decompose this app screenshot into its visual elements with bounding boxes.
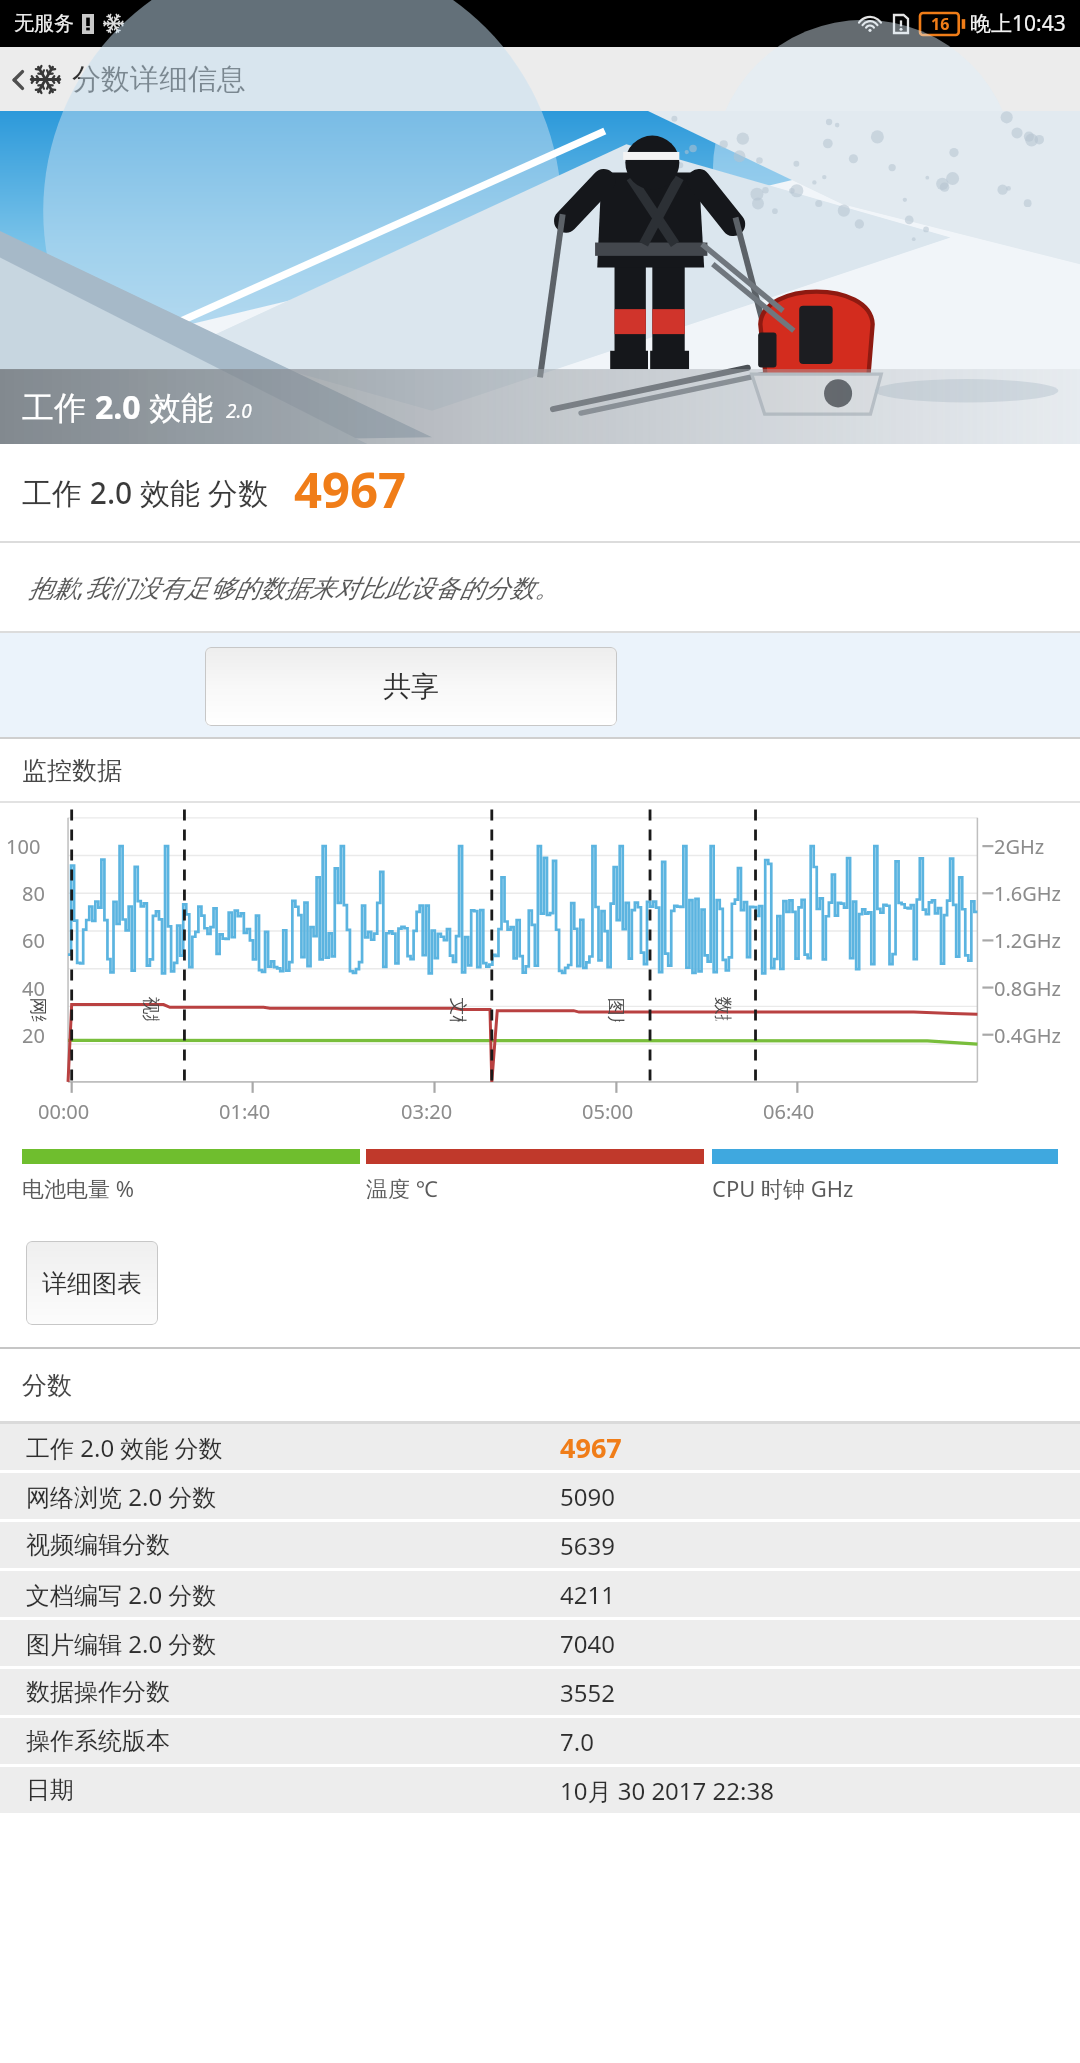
staticText: 电池电量 % [22, 1173, 135, 1203]
staticText: 2.0 [226, 398, 252, 424]
staticText: 80 [22, 880, 45, 907]
button[interactable]: 网络浏览 2.0 分数 [0, 1473, 1080, 1519]
staticText: 5639 [560, 1529, 615, 1562]
staticText: 抱歉,我们没有足够的数据来对比此设备的分数。 [28, 570, 560, 604]
staticText: 操作系统版本 [26, 1726, 170, 1756]
staticText: 无服务 [14, 11, 74, 36]
staticText: 日期 [26, 1775, 74, 1805]
staticText: 40 [22, 975, 45, 1002]
staticText: 文档编写 2.0 分数 [26, 1578, 217, 1611]
staticText: 1.6GHz [994, 880, 1062, 907]
staticText: 分数详细信息 [72, 61, 246, 98]
staticText: 5090 [560, 1480, 615, 1513]
staticText: 16 [931, 13, 950, 35]
button[interactable]: 数据操作分数 [0, 1669, 1080, 1715]
staticText: 工作 [22, 385, 95, 429]
staticText: 网络浏览 2.0 [25, 997, 50, 1021]
button[interactable]: 视频编辑分数 [0, 1522, 1080, 1568]
button[interactable]: 文档编写 2.0 分数 [0, 1571, 1080, 1617]
staticText: 视频编辑分数 [26, 1530, 170, 1560]
staticText: 0.4GHz [994, 1022, 1062, 1049]
staticText: 4967 [294, 456, 407, 523]
staticText: 2.0 [95, 385, 141, 429]
staticText: 共享 [383, 669, 439, 704]
staticText: 晚上10:43 [970, 9, 1066, 38]
staticText: 工作 2.0 效能 分数 [22, 472, 268, 513]
staticText: 2GHz [994, 833, 1045, 860]
staticText: 05:00 [582, 1098, 634, 1125]
staticText: 数据操作分数 [26, 1677, 170, 1707]
staticText: 监控数据 [22, 755, 122, 786]
button[interactable]: 操作系统版本 [0, 1718, 1080, 1764]
staticText: 图片编辑 2.0 [603, 997, 628, 1021]
staticText: 7.0 [560, 1725, 594, 1758]
staticText: 60 [22, 927, 45, 954]
staticText: 图片编辑 2.0 分数 [26, 1627, 217, 1660]
staticText: 工作 2.0 效能 分数 [26, 1431, 223, 1464]
staticText: 00:00 [38, 1098, 90, 1125]
button[interactable]: 图片编辑 2.0 分数 [0, 1620, 1080, 1666]
button[interactable]: 日期 [0, 1767, 1080, 1813]
staticText: 分数 [22, 1370, 72, 1401]
staticText: 3552 [560, 1676, 615, 1709]
button[interactable]: 详细图表 [26, 1241, 158, 1325]
staticText: 20 [22, 1022, 45, 1049]
staticText: 详细图表 [42, 1268, 142, 1299]
staticText: 4211 [560, 1578, 615, 1611]
staticText: 视频编辑 [138, 996, 161, 1020]
staticText: 06:40 [763, 1098, 815, 1125]
staticText: 1.2GHz [994, 927, 1062, 954]
staticText: 7040 [560, 1627, 615, 1660]
button[interactable]: 共享 [205, 647, 617, 726]
staticText: 03:20 [401, 1098, 453, 1125]
button[interactable]: Back [0, 61, 256, 98]
staticText: 数据操作 [710, 996, 733, 1020]
staticText: 效能 [141, 385, 214, 429]
staticText: 网络浏览 2.0 分数 [26, 1480, 217, 1513]
staticText: 100 [6, 833, 41, 860]
staticText: 4967 [560, 1429, 622, 1466]
staticText: 文档编写 2.0 [445, 997, 470, 1021]
button[interactable]: 工作 2.0 效能 分数 [0, 1424, 1080, 1470]
staticText: 10月 30 2017 22:38 [560, 1774, 774, 1807]
staticText: 0.8GHz [994, 975, 1062, 1002]
staticText: CPU 时钟 GHz [712, 1173, 854, 1203]
staticText: 温度 ℃ [366, 1173, 438, 1203]
staticText: 01:40 [219, 1098, 271, 1125]
